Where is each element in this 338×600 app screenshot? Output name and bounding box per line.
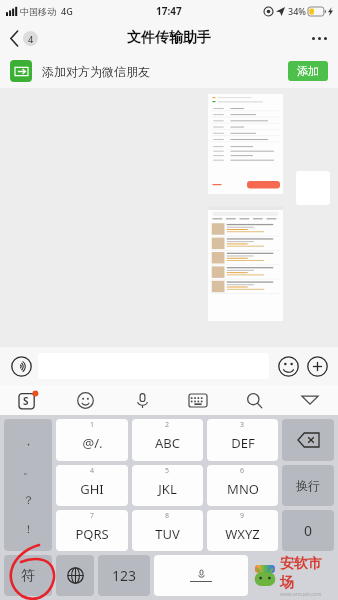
staticText: 符 <box>21 567 35 585</box>
button[interactable]: 添加对方为微信朋友 <box>0 54 338 88</box>
staticText: 17:47 <box>156 4 182 18</box>
button[interactable]: 添加 <box>288 61 328 81</box>
staticText: 3 <box>240 420 245 430</box>
button[interactable]: 9 <box>207 510 278 551</box>
button[interactable]: More actions <box>304 353 330 379</box>
staticText: 文件传输助手 <box>127 29 211 47</box>
staticText: 4G <box>61 5 73 17</box>
button[interactable]: Image message <box>208 94 283 194</box>
button[interactable]: 8 <box>132 510 203 551</box>
staticText: 8 <box>165 511 170 521</box>
button[interactable]: 123 <box>98 555 150 596</box>
button[interactable]: Emoji <box>275 353 301 379</box>
button[interactable]: Search <box>226 385 282 415</box>
staticText: 6 <box>240 466 245 476</box>
button[interactable]: Image message <box>208 206 283 321</box>
button[interactable]: Voice input <box>8 353 34 379</box>
staticText: JKL <box>158 480 177 498</box>
button[interactable]: 0 <box>282 510 334 551</box>
button[interactable]: Keyboard <box>170 385 226 415</box>
button[interactable]: 6 <box>207 465 278 506</box>
button[interactable]: 1 <box>56 419 128 461</box>
button[interactable]: 5 <box>132 465 203 506</box>
staticText: 4 <box>28 33 34 45</box>
button[interactable]: More options <box>301 27 338 50</box>
staticText: TUV <box>155 525 180 543</box>
staticText: MNO <box>227 480 259 498</box>
staticText: GHI <box>80 480 104 498</box>
staticText: 安软市场 <box>280 555 334 591</box>
button[interactable]: Switch language <box>56 555 94 596</box>
button[interactable]: Space <box>154 555 248 596</box>
staticText: 4 <box>90 466 95 476</box>
staticText: ！ <box>23 522 34 536</box>
staticText: 2 <box>165 420 170 430</box>
staticText: 添加 <box>297 64 319 78</box>
staticText: ？ <box>23 493 34 507</box>
staticText: 9 <box>240 511 245 521</box>
staticText: 0 <box>304 521 313 540</box>
button[interactable]: 7 <box>56 510 128 551</box>
staticText: PQRS <box>75 525 109 543</box>
button[interactable]: Voice <box>114 385 170 415</box>
staticText: 中国移动 <box>20 6 56 17</box>
button[interactable]: 2 <box>132 419 203 461</box>
button[interactable]: Backspace <box>282 419 334 461</box>
staticText: 。 <box>23 463 34 477</box>
button[interactable]: 4 <box>56 465 128 506</box>
staticText: 换行 <box>296 478 320 493</box>
staticText: WXYZ <box>225 525 260 543</box>
staticText: ABC <box>155 434 180 452</box>
button[interactable]: Punctuation <box>4 419 52 551</box>
button[interactable]: New line <box>282 465 334 506</box>
staticText: DEF <box>231 434 255 452</box>
button[interactable]: 3 <box>207 419 278 461</box>
button[interactable]: Hide keyboard <box>282 385 338 415</box>
button[interactable]: Sogou input <box>0 385 57 415</box>
staticText: ， <box>23 434 34 448</box>
staticText: 34% <box>288 5 306 17</box>
staticText: 7 <box>90 511 95 521</box>
button[interactable]: 符 <box>4 555 52 596</box>
staticText: 123 <box>112 566 137 585</box>
staticText: 1 <box>90 420 95 430</box>
staticText: @/. <box>82 434 103 452</box>
staticText: S <box>23 394 29 408</box>
button[interactable]: Emoji panel <box>57 385 114 415</box>
staticText: 5 <box>165 466 170 476</box>
staticText: www.anruan.com <box>280 591 322 596</box>
button[interactable]: Back, 4 unread <box>7 28 41 49</box>
staticText: 添加对方为微信朋友 <box>42 64 150 79</box>
